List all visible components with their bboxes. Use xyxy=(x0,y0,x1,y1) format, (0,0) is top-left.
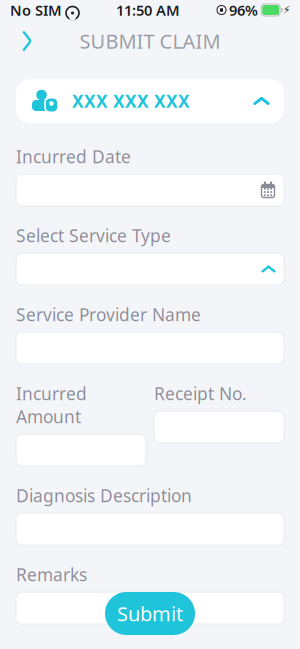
button[interactable]: XXX XXX XXX xyxy=(16,79,284,123)
staticText: Submit xyxy=(117,600,183,627)
button[interactable]: Back xyxy=(10,24,44,58)
staticText: XXX XXX XXX xyxy=(72,89,190,112)
button[interactable] xyxy=(16,253,284,285)
staticText: 11:50 AM xyxy=(116,0,180,20)
staticText: Receipt No. xyxy=(154,382,247,405)
staticText: Incurred Amount xyxy=(16,382,87,428)
staticText: Incurred Date xyxy=(16,145,131,168)
staticText: 96% xyxy=(229,0,258,20)
staticText: Diagnosis Description xyxy=(16,484,192,507)
button[interactable] xyxy=(16,174,284,206)
staticText: SUBMIT CLAIM xyxy=(79,28,220,54)
staticText: Service Provider Name xyxy=(16,303,201,326)
staticText: Select Service Type xyxy=(16,224,171,247)
button[interactable] xyxy=(154,411,284,443)
button[interactable] xyxy=(16,434,146,466)
staticText: No SIM xyxy=(10,0,62,20)
button[interactable] xyxy=(16,592,284,624)
staticText: Remarks xyxy=(16,563,87,586)
staticText: ⚡︎ xyxy=(283,4,290,16)
button[interactable]: Submit xyxy=(105,592,195,635)
